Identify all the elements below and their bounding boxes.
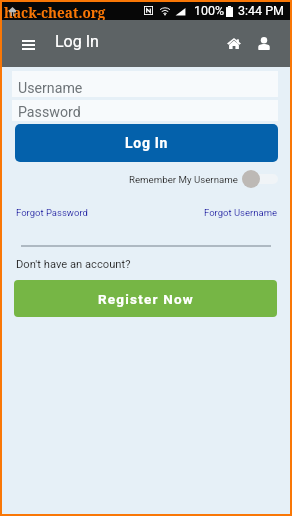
staticText: Remember My Username bbox=[129, 174, 238, 185]
button[interactable]: Username bbox=[12, 71, 278, 97]
button[interactable]: Account bbox=[248, 20, 282, 67]
staticText: 3:44 PM bbox=[238, 3, 285, 18]
button[interactable]: Password bbox=[12, 100, 278, 121]
button[interactable]: Register Now bbox=[14, 280, 277, 317]
staticText: Password bbox=[18, 104, 81, 121]
button[interactable]: Forgot Username bbox=[204, 207, 278, 218]
staticText: hack-cheat.org bbox=[4, 4, 106, 22]
staticText: Don't have an account? bbox=[16, 258, 131, 271]
staticText: Log In bbox=[55, 32, 99, 51]
button[interactable]: Remember My Username toggle bbox=[124, 168, 279, 190]
button[interactable]: Home bbox=[214, 20, 252, 67]
staticText: Username bbox=[18, 80, 83, 97]
staticText: Log In bbox=[125, 135, 169, 151]
button[interactable]: Menu bbox=[8, 20, 48, 67]
staticText: 100% bbox=[194, 3, 225, 18]
button[interactable]: Forgot Password bbox=[16, 207, 88, 218]
button[interactable]: Log In bbox=[15, 124, 278, 162]
staticText: Register Now bbox=[98, 291, 194, 307]
